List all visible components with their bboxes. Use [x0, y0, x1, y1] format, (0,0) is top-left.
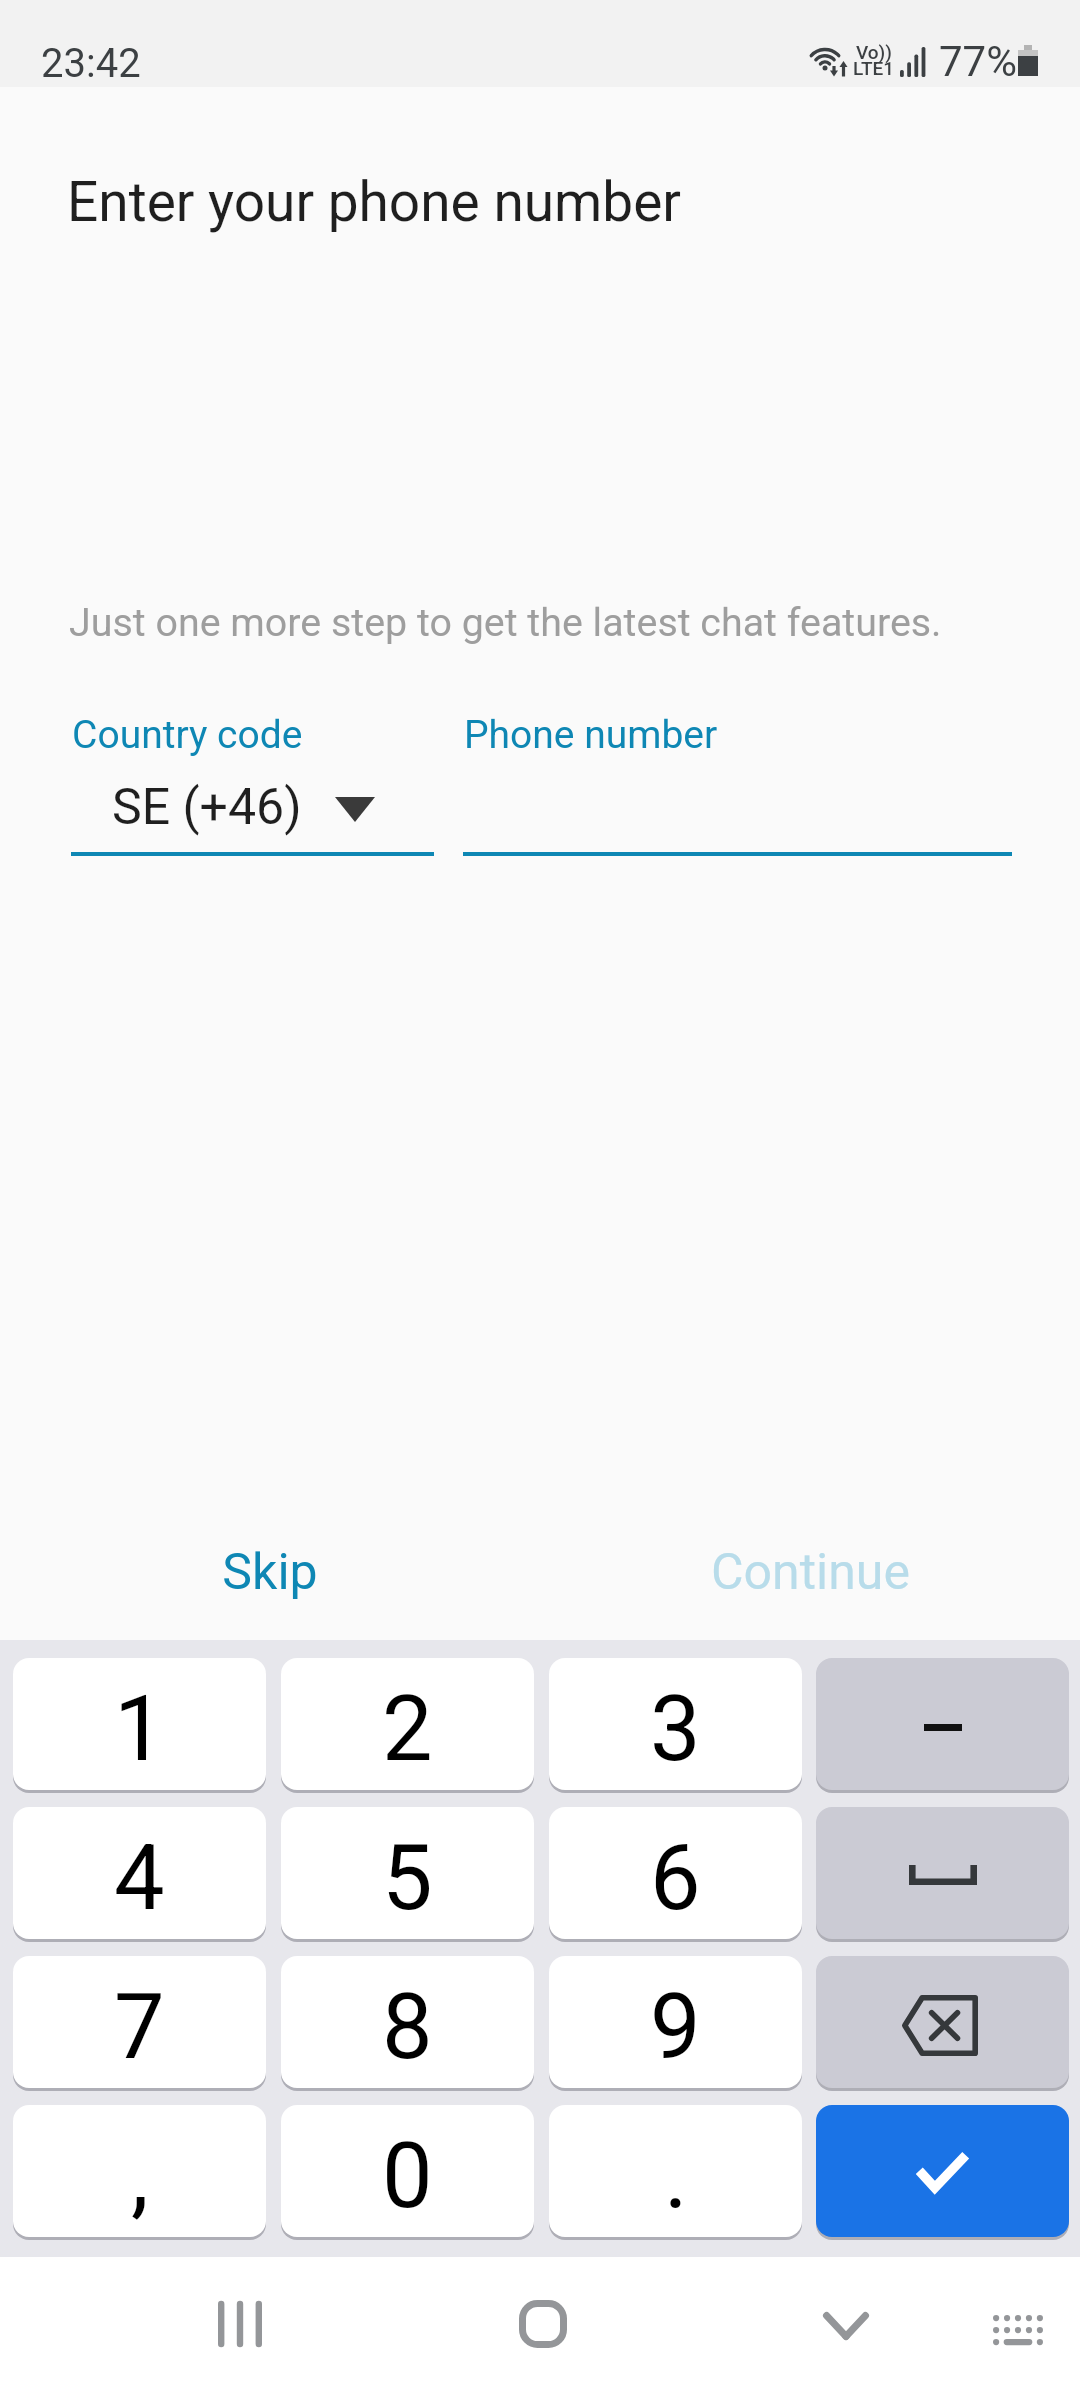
staticText: 2 — [382, 1677, 433, 1782]
staticText: Country code — [72, 712, 303, 758]
staticText: LTE1 — [853, 57, 895, 79]
staticText: 77% — [939, 37, 1017, 86]
button[interactable] — [463, 770, 1012, 856]
button[interactable]: , — [13, 2105, 266, 2237]
staticText: Vo)) — [856, 41, 892, 63]
button[interactable]: 4 — [13, 1807, 266, 1939]
button[interactable]: Skip — [0, 1517, 540, 1627]
staticText: Continue — [711, 1543, 910, 1602]
staticText: Enter your phone number — [67, 170, 681, 234]
button[interactable]: Recent apps — [170, 2264, 310, 2384]
staticText: 9 — [650, 1975, 701, 2080]
button[interactable]: 7 — [13, 1956, 266, 2088]
button[interactable]: 2 — [281, 1658, 534, 1790]
staticText: Skip — [222, 1543, 318, 1602]
staticText: Just one more step to get the latest cha… — [69, 599, 942, 645]
button[interactable]: Continue — [540, 1517, 1080, 1627]
button[interactable]: SE (+46) — [71, 770, 434, 856]
button[interactable]: Space — [816, 1807, 1069, 1939]
staticText: 3 — [650, 1677, 701, 1782]
button[interactable]: Enter — [816, 2105, 1069, 2237]
button[interactable]: 8 — [281, 1956, 534, 2088]
staticText: , — [131, 2124, 149, 2229]
staticText: 1 — [114, 1677, 165, 1782]
button[interactable]: Switch keyboard — [948, 2268, 1080, 2388]
button[interactable]: . — [549, 2105, 802, 2237]
button[interactable]: 0 — [281, 2105, 534, 2237]
staticText: 5 — [382, 1826, 433, 1931]
button[interactable]: Backspace — [816, 1956, 1069, 2088]
button[interactable]: Hide keyboard — [776, 2266, 916, 2386]
staticText: 8 — [382, 1975, 433, 2080]
staticText: 4 — [114, 1826, 165, 1931]
button[interactable]: 5 — [281, 1807, 534, 1939]
button[interactable]: 6 — [549, 1807, 802, 1939]
button[interactable]: Dash — [816, 1658, 1069, 1790]
staticText: 6 — [650, 1826, 701, 1931]
staticText: Phone number — [464, 712, 718, 758]
button[interactable]: 9 — [549, 1956, 802, 2088]
button[interactable]: 1 — [13, 1658, 266, 1790]
button[interactable]: 3 — [549, 1658, 802, 1790]
staticText: 0 — [382, 2124, 433, 2229]
staticText: 7 — [114, 1975, 165, 2080]
staticText: 23:42 — [41, 40, 141, 87]
staticText: SE (+46) — [112, 778, 302, 837]
staticText: . — [664, 2124, 688, 2229]
button[interactable]: Home — [473, 2264, 613, 2384]
